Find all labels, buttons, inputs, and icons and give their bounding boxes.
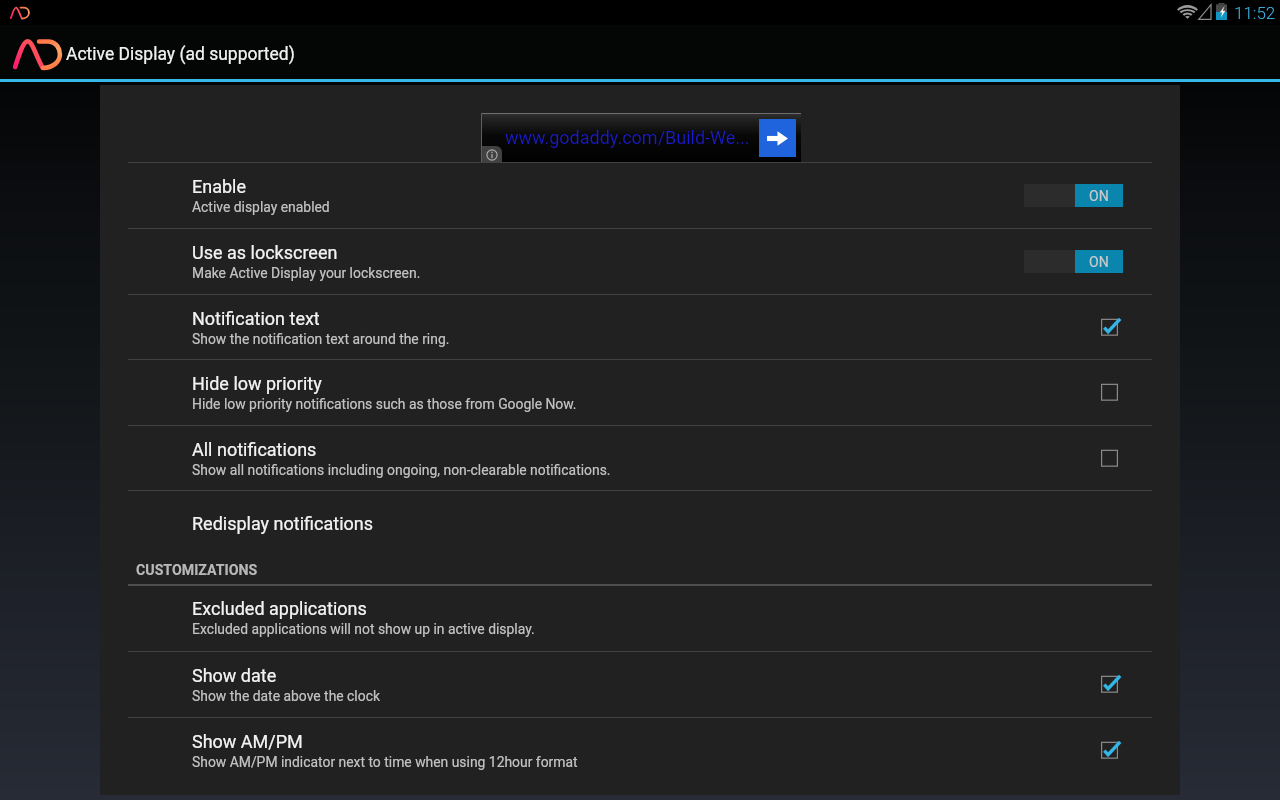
staticText: Active Display (ad supported) bbox=[66, 44, 295, 65]
button[interactable]: Checked bbox=[1101, 316, 1123, 338]
button[interactable]: Redisplay notifications bbox=[100, 490, 1180, 547]
button[interactable]: Switch, on bbox=[1024, 184, 1123, 207]
staticText: Show all notifications including ongoing… bbox=[192, 462, 611, 478]
staticText: www.godaddy.com/Build-We... bbox=[505, 127, 750, 148]
button[interactable]: Unchecked bbox=[1101, 381, 1123, 403]
staticText: Active display enabled bbox=[192, 199, 330, 215]
button[interactable]: Unchecked bbox=[1101, 447, 1123, 469]
staticText: Excluded applications will not show up i… bbox=[192, 621, 535, 637]
button[interactable]: Show AM/PM bbox=[100, 717, 1180, 782]
staticText: ON bbox=[1089, 254, 1109, 270]
button[interactable]: Advertisement bbox=[481, 113, 801, 163]
staticText: All notifications bbox=[192, 439, 317, 460]
staticText: Notification text bbox=[192, 308, 320, 329]
button[interactable]: Enable bbox=[100, 162, 1180, 228]
button[interactable]: Checked bbox=[1101, 673, 1123, 695]
button[interactable]: Hide low priority bbox=[100, 359, 1180, 425]
staticText: Redisplay notifications bbox=[192, 513, 374, 534]
staticText: Show the date above the clock bbox=[192, 688, 380, 704]
staticText: Excluded applications bbox=[192, 598, 367, 619]
staticText: Enable bbox=[192, 176, 246, 197]
staticText: Show AM/PM bbox=[192, 731, 303, 752]
staticText: Show the notification text around the ri… bbox=[192, 331, 450, 347]
button[interactable]: All notifications bbox=[100, 425, 1180, 490]
staticText: Hide low priority notifications such as … bbox=[192, 396, 577, 412]
button[interactable]: Switch, on bbox=[1024, 250, 1123, 273]
staticText: Make Active Display your lockscreen. bbox=[192, 265, 421, 281]
staticText: Use as lockscreen bbox=[192, 242, 338, 263]
staticText: Hide low priority bbox=[192, 373, 322, 394]
button[interactable]: Notification text bbox=[100, 294, 1180, 360]
staticText: Show AM/PM indicator next to time when u… bbox=[192, 754, 578, 770]
staticText: Show date bbox=[192, 665, 277, 686]
staticText: ON bbox=[1089, 188, 1109, 204]
staticText: 11:52 bbox=[1234, 3, 1276, 23]
button[interactable]: Checked bbox=[1101, 739, 1123, 761]
button[interactable]: Show date bbox=[100, 651, 1180, 716]
button[interactable]: Use as lockscreen bbox=[100, 228, 1180, 294]
staticText: CUSTOMIZATIONS bbox=[136, 562, 258, 579]
button[interactable]: Excluded applications bbox=[100, 584, 1180, 650]
